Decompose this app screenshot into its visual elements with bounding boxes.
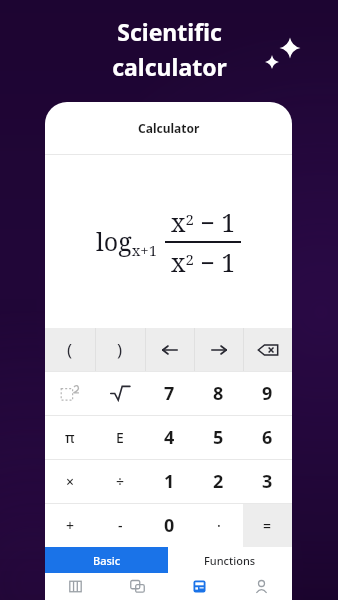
staticText: 1: [164, 469, 175, 494]
staticText: =: [263, 516, 272, 535]
staticText: Scientific: [117, 16, 222, 47]
button[interactable]: ·: [194, 503, 243, 547]
button[interactable]: Messages: [106, 573, 168, 600]
staticText: 7: [164, 381, 175, 406]
staticText: ): [117, 338, 123, 361]
button[interactable]: 5: [194, 415, 243, 459]
button[interactable]: Move cursor left: [145, 328, 194, 371]
button[interactable]: ×: [45, 459, 95, 503]
staticText: logx+1: [96, 224, 158, 260]
staticText: 2: [213, 469, 224, 494]
staticText: ·: [217, 516, 221, 535]
staticText: 4: [164, 425, 175, 450]
staticText: π: [65, 428, 75, 447]
button[interactable]: 7: [145, 371, 194, 415]
staticText: 3: [262, 469, 273, 494]
button[interactable]: +: [45, 503, 95, 547]
button[interactable]: 6: [243, 415, 292, 459]
staticText: 8: [213, 381, 224, 406]
button[interactable]: -: [95, 503, 145, 547]
button[interactable]: π: [45, 415, 95, 459]
button[interactable]: 2: [194, 459, 243, 503]
button[interactable]: Basic: [45, 547, 168, 573]
button[interactable]: 4: [145, 415, 194, 459]
button[interactable]: =: [243, 503, 292, 547]
button[interactable]: Profile: [230, 573, 292, 600]
staticText: E: [116, 428, 124, 447]
staticText: x2 − 1: [171, 205, 236, 239]
staticText: (: [67, 338, 73, 361]
staticText: Basic: [93, 553, 121, 568]
button[interactable]: Functions: [168, 547, 292, 573]
staticText: -: [118, 516, 123, 535]
staticText: Functions: [204, 553, 256, 568]
staticText: Calculator: [138, 120, 200, 136]
staticText: x2 − 1: [171, 245, 236, 279]
button[interactable]: Move cursor right: [194, 328, 243, 371]
button[interactable]: 8: [194, 371, 243, 415]
staticText: ÷: [116, 472, 125, 491]
staticText: +: [66, 516, 75, 535]
staticText: ×: [66, 472, 75, 491]
button[interactable]: 9: [243, 371, 292, 415]
staticText: 5: [213, 425, 224, 450]
button[interactable]: ): [95, 328, 145, 371]
button[interactable]: Library: [45, 573, 106, 600]
button[interactable]: 3: [243, 459, 292, 503]
button[interactable]: E: [95, 415, 145, 459]
staticText: 0: [164, 513, 175, 538]
button[interactable]: Square: [45, 371, 95, 415]
staticText: 9: [262, 381, 273, 406]
button[interactable]: 1: [145, 459, 194, 503]
button[interactable]: Backspace: [243, 328, 292, 371]
button[interactable]: [95, 371, 145, 415]
staticText: 6: [262, 425, 273, 450]
button[interactable]: (: [45, 328, 95, 371]
button[interactable]: 0: [145, 503, 194, 547]
button[interactable]: Calculator: [168, 573, 230, 600]
button[interactable]: ÷: [95, 459, 145, 503]
staticText: calculator: [112, 51, 227, 82]
